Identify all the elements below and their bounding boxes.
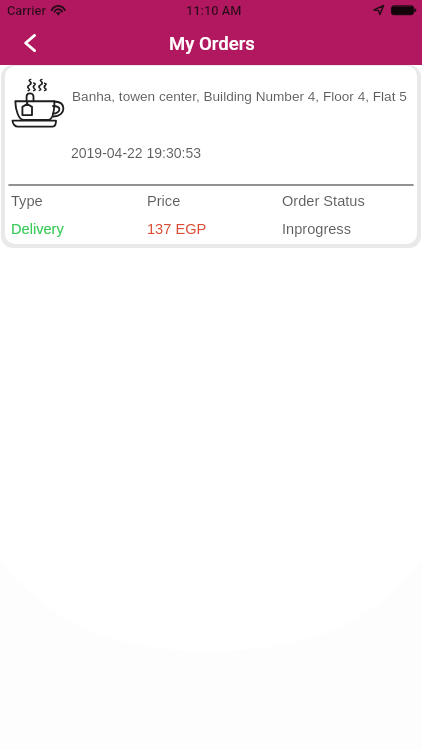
staticText: Inprogress xyxy=(282,221,351,237)
staticText: My Orders xyxy=(169,33,255,55)
staticText: 2019-04-22 19:30:53 xyxy=(71,145,201,161)
staticText: Price xyxy=(147,193,181,209)
staticText: 137 EGP xyxy=(147,221,207,237)
staticText: Carrier xyxy=(7,3,46,18)
staticText: Type xyxy=(11,193,43,209)
staticText: Banha, towen center, Building Number 4, … xyxy=(72,89,407,104)
staticText: Order Status xyxy=(282,193,365,209)
staticText: 11:10 AM xyxy=(186,3,242,18)
staticText: Delivery xyxy=(11,221,64,237)
button[interactable]: Back xyxy=(8,21,52,65)
button[interactable]: Banha, towen center, Building Number 4, … xyxy=(5,66,417,244)
